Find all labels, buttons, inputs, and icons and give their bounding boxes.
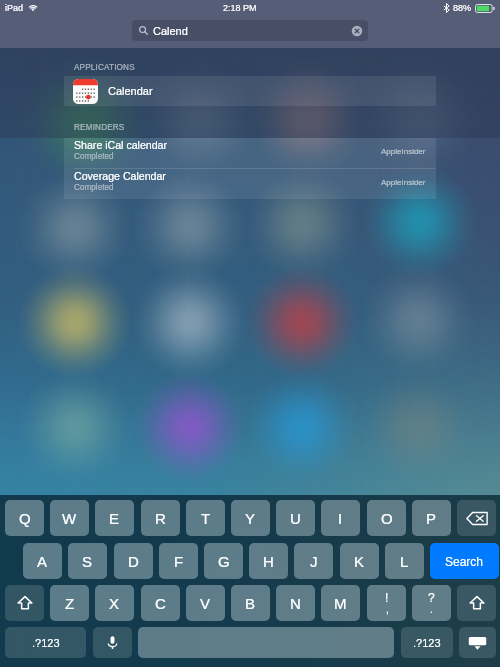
button[interactable]: .?123: [5, 627, 86, 658]
button[interactable]: N: [276, 585, 315, 621]
button[interactable]: Backspace: [457, 500, 496, 536]
staticText: X: [109, 595, 120, 612]
staticText: L: [400, 553, 409, 570]
staticText: T: [201, 510, 211, 527]
staticText: Z: [65, 595, 75, 612]
staticText: S: [82, 553, 93, 570]
staticText: K: [354, 553, 365, 570]
staticText: Share iCal calendar: [74, 139, 168, 151]
button[interactable]: Coverage Calendar: [64, 169, 436, 199]
staticText: REMINDERS: [74, 123, 125, 132]
button[interactable]: Z: [50, 585, 89, 621]
button[interactable]: V: [186, 585, 225, 621]
staticText: U: [290, 510, 301, 527]
staticText: F: [174, 553, 184, 570]
staticText: .: [430, 604, 433, 615]
button[interactable]: K: [340, 543, 379, 579]
button[interactable]: Q: [5, 500, 44, 536]
staticText: G: [218, 553, 230, 570]
button[interactable]: G: [204, 543, 243, 579]
staticText: iPad: [5, 3, 24, 13]
staticText: 88%: [453, 3, 472, 13]
button[interactable]: Y: [231, 500, 270, 536]
button[interactable]: H: [249, 543, 288, 579]
button[interactable]: S: [68, 543, 107, 579]
staticText: AppleInsider: [381, 147, 426, 156]
button[interactable]: U: [276, 500, 315, 536]
button[interactable]: .?123: [401, 627, 453, 658]
staticText: V: [200, 595, 211, 612]
button[interactable]: Search: [430, 543, 499, 579]
staticText: Coverage Calendar: [74, 170, 166, 182]
button[interactable]: Share iCal calendar: [64, 138, 436, 168]
staticText: E: [109, 510, 120, 527]
button[interactable]: Calendar: [64, 76, 436, 106]
staticText: APPLICATIONS: [74, 63, 135, 72]
button[interactable]: Shift: [5, 585, 44, 621]
button[interactable]: B: [231, 585, 270, 621]
button[interactable]: Dictation: [93, 627, 132, 658]
staticText: Search: [445, 555, 484, 568]
button[interactable]: ?: [412, 585, 451, 621]
staticText: .?123: [32, 637, 60, 649]
button[interactable]: Hide keyboard: [459, 627, 496, 658]
button[interactable]: R: [141, 500, 180, 536]
staticText: B: [245, 595, 256, 612]
staticText: .?123: [413, 637, 441, 649]
button[interactable]: A: [23, 543, 62, 579]
staticText: H: [263, 553, 274, 570]
button[interactable]: M: [321, 585, 360, 621]
staticText: ?: [428, 591, 435, 604]
button[interactable]: T: [186, 500, 225, 536]
button[interactable]: F: [159, 543, 198, 579]
staticText: Calend: [153, 25, 188, 37]
button[interactable]: E: [95, 500, 134, 536]
button[interactable]: Space: [138, 627, 394, 658]
button[interactable]: Clear search: [351, 25, 363, 37]
staticText: W: [62, 510, 77, 527]
staticText: D: [128, 553, 139, 570]
staticText: M: [334, 595, 347, 612]
staticText: AppleInsider: [381, 178, 426, 187]
staticText: Q: [19, 510, 31, 527]
staticText: Completed: [74, 183, 114, 192]
button[interactable]: D: [114, 543, 153, 579]
staticText: A: [37, 553, 48, 570]
button[interactable]: X: [95, 585, 134, 621]
staticText: N: [290, 595, 301, 612]
button[interactable]: I: [321, 500, 360, 536]
button[interactable]: L: [385, 543, 424, 579]
staticText: P: [426, 510, 437, 527]
button[interactable]: Shift: [457, 585, 496, 621]
button[interactable]: J: [294, 543, 333, 579]
staticText: 2:18 PM: [223, 3, 257, 13]
button[interactable]: C: [141, 585, 180, 621]
staticText: !: [385, 591, 389, 604]
button[interactable]: !: [367, 585, 406, 621]
staticText: O: [381, 510, 393, 527]
staticText: J: [310, 553, 318, 570]
staticText: R: [155, 510, 166, 527]
staticText: Completed: [74, 152, 114, 161]
staticText: ,: [386, 604, 389, 615]
staticText: Y: [245, 510, 256, 527]
button[interactable]: W: [50, 500, 89, 536]
staticText: Calendar: [108, 85, 153, 97]
button[interactable]: Calend: [132, 20, 368, 41]
button[interactable]: O: [367, 500, 406, 536]
staticText: C: [155, 595, 166, 612]
button[interactable]: P: [412, 500, 451, 536]
staticText: I: [338, 510, 343, 527]
